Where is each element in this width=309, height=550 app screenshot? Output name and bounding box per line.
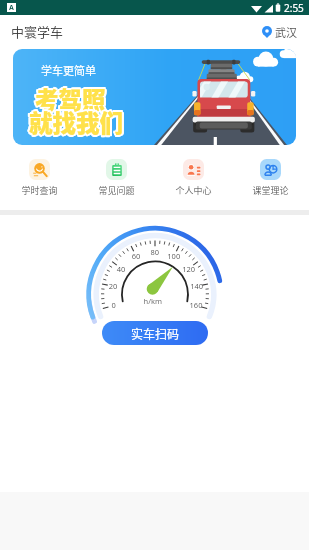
staticText: 考驾照: [37, 82, 108, 116]
staticText: 学时查询: [21, 184, 58, 197]
staticText: 就找我们: [30, 106, 124, 140]
button[interactable]: 学车更简单: [13, 49, 296, 145]
staticText: 就找我们: [29, 103, 123, 137]
staticText: 考驾照: [37, 83, 108, 117]
staticText: 考驾照: [33, 81, 104, 115]
button[interactable]: 常见问题: [78, 159, 155, 197]
staticText: 考驾照: [34, 83, 105, 117]
staticText: 学车更简单: [41, 62, 96, 78]
staticText: 2:55: [284, 1, 304, 15]
staticText: 考驾照: [35, 80, 106, 114]
staticText: 考驾照: [34, 81, 105, 115]
staticText: 就找我们: [30, 104, 124, 138]
staticText: 就找我们: [31, 105, 125, 139]
staticText: 课堂理论: [252, 184, 289, 197]
staticText: 就找我们: [27, 104, 121, 138]
staticText: A: [9, 3, 14, 12]
staticText: 就找我们: [27, 105, 121, 139]
button[interactable]: 个人中心: [155, 159, 232, 197]
staticText: 考驾照: [36, 83, 107, 117]
button[interactable]: 课堂理论: [232, 159, 309, 197]
staticText: 就找我们: [29, 107, 123, 141]
staticText: 就找我们: [28, 107, 122, 141]
staticText: 就找我们: [29, 105, 123, 139]
staticText: 就找我们: [28, 106, 122, 140]
staticText: 中寰学车: [11, 22, 64, 41]
staticText: 个人中心: [175, 184, 212, 197]
staticText: 考驾照: [33, 82, 104, 116]
staticText: 考驾照: [36, 81, 107, 115]
staticText: 考驾照: [36, 80, 107, 114]
staticText: 实车扫码: [131, 325, 180, 342]
button[interactable]: 选择城市 武汉: [262, 24, 297, 40]
staticText: 常见问题: [98, 184, 135, 197]
staticText: 就找我们: [30, 103, 124, 137]
staticText: 考驾照: [35, 82, 106, 116]
staticText: 就找我们: [28, 104, 122, 138]
staticText: 考驾照: [35, 84, 106, 118]
button[interactable]: 实车扫码: [102, 321, 208, 345]
staticText: 武汉: [275, 24, 297, 40]
staticText: 考驾照: [34, 84, 105, 118]
button[interactable]: 学时查询: [0, 159, 78, 197]
staticText: 就找我们: [31, 106, 125, 140]
